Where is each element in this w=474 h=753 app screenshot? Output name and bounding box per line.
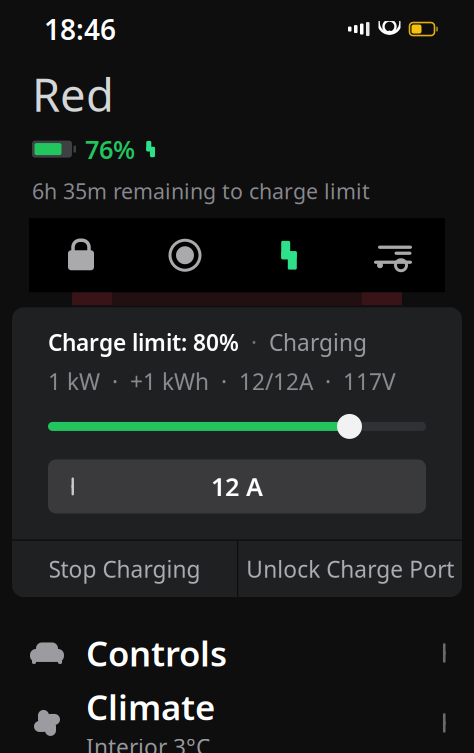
staticText: ·	[239, 327, 269, 357]
staticText: Stop Charging	[48, 554, 200, 584]
staticText: Unlock Charge Port	[246, 554, 454, 584]
staticText: 12 A	[211, 470, 263, 503]
button[interactable]: 12 A	[48, 459, 426, 513]
button[interactable]: Charging	[237, 218, 341, 292]
staticText: 76%	[85, 132, 135, 166]
staticText: Climate	[86, 684, 215, 730]
staticText: Charge limit: 80%	[48, 327, 239, 357]
button[interactable]: Start	[133, 218, 237, 292]
button[interactable]: Controls	[0, 619, 474, 687]
button[interactable]: Climate	[0, 687, 474, 753]
staticText: Interior 3°C	[86, 732, 210, 753]
staticText: 6h 35m remaining to charge limit	[32, 177, 370, 205]
button[interactable]: Frunk	[341, 218, 445, 292]
button[interactable]: Lock	[29, 218, 133, 292]
staticText: Charging	[269, 327, 367, 357]
staticText: Controls	[86, 630, 227, 676]
staticText: 18:46	[44, 10, 116, 48]
button[interactable]: Unlock Charge Port	[238, 541, 462, 597]
button[interactable]: Stop Charging	[12, 541, 237, 597]
staticText: Red	[32, 64, 114, 124]
staticText: 1 kW · +1 kWh · 12/12A · 117V	[48, 366, 396, 396]
